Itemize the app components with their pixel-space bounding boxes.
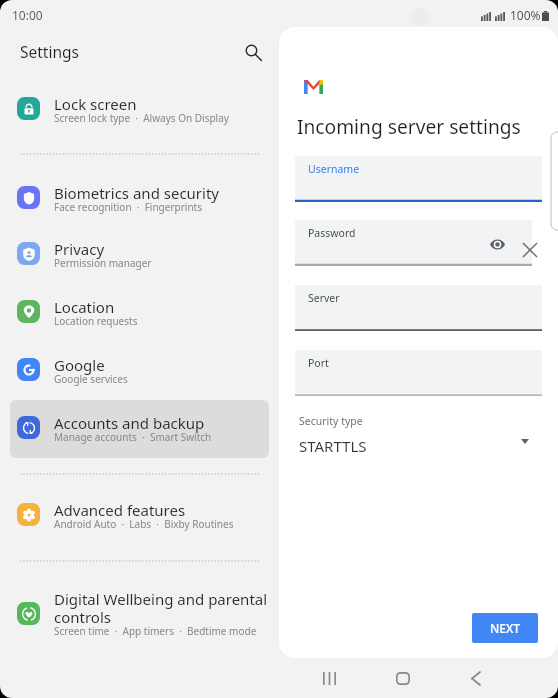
staticText: Password: [308, 226, 356, 240]
button[interactable]: Digital Wellbeing and parental controls: [0, 589, 279, 659]
staticText: Google: [54, 355, 105, 375]
staticText: Location: [54, 297, 115, 317]
staticText: Location requests: [54, 314, 138, 328]
button[interactable]: Password: [295, 220, 532, 266]
button[interactable]: Privacy: [0, 239, 279, 293]
staticText: Manage accounts · Smart Switch: [54, 430, 212, 444]
button[interactable]: NEXT: [472, 613, 538, 643]
button[interactable]: Home: [383, 658, 423, 698]
button[interactable]: Back: [456, 658, 496, 698]
staticText: Screen lock type · Always On Display: [54, 111, 229, 125]
staticText: Username: [308, 162, 360, 176]
staticText: Android Auto · Labs · Bixby Routines: [54, 517, 234, 531]
staticText: Google services: [54, 372, 128, 386]
staticText: Lock screen: [54, 94, 137, 114]
button[interactable]: Accounts and backup: [0, 413, 279, 467]
staticText: STARTTLS: [299, 436, 367, 456]
button[interactable]: Show password: [486, 233, 508, 255]
button[interactable]: Search: [237, 36, 270, 69]
staticText: Server: [308, 291, 340, 305]
button[interactable]: Google: [0, 355, 279, 409]
staticText: Incoming server settings: [297, 113, 521, 139]
staticText: NEXT: [490, 620, 521, 636]
button[interactable]: Location: [0, 297, 279, 351]
staticText: Advanced features: [54, 500, 186, 520]
staticText: Screen time · App timers · Bedtime mode: [54, 624, 257, 638]
button[interactable]: Server: [295, 285, 542, 331]
button[interactable]: Advanced features: [0, 500, 279, 554]
staticText: Accounts and backup: [54, 413, 205, 433]
button[interactable]: Username: [295, 156, 542, 202]
button[interactable]: Biometrics and security: [0, 183, 279, 237]
button[interactable]: Close: [519, 239, 541, 261]
staticText: Security type: [299, 414, 363, 428]
staticText: 100%: [510, 7, 541, 23]
staticText: Privacy: [54, 239, 105, 259]
staticText: Biometrics and security: [54, 183, 220, 203]
button[interactable]: Security type: [295, 411, 542, 487]
staticText: Face recognition · Fingerprints: [54, 200, 202, 214]
button[interactable]: Recent apps: [309, 658, 349, 698]
staticText: Digital Wellbeing and parental controls: [54, 589, 268, 627]
button[interactable]: Lock screen: [0, 94, 279, 148]
staticText: 10:00: [12, 7, 43, 23]
staticText: Permission manager: [54, 256, 152, 270]
staticText: Settings: [20, 41, 79, 62]
staticText: Port: [308, 356, 329, 370]
button[interactable]: Port: [295, 350, 542, 396]
